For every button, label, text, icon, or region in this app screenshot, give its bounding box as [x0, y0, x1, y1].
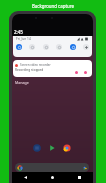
button[interactable]: App [48, 144, 56, 152]
button[interactable]: Flashlight [56, 44, 62, 50]
button[interactable]: Delete [84, 71, 87, 74]
button[interactable]: Manage [14, 79, 30, 86]
button[interactable]: Wifi [16, 44, 22, 50]
button[interactable]: Rotate [43, 44, 49, 50]
staticText: Background capture [32, 3, 74, 9]
button[interactable]: Add tile [83, 44, 89, 50]
staticText: Manage [15, 80, 29, 85]
button[interactable]: Share [75, 71, 78, 74]
button[interactable]: App [63, 144, 71, 152]
button[interactable]: Screen video recorder [13, 60, 92, 77]
button[interactable]: Sound [29, 44, 35, 50]
button[interactable]: Back [20, 172, 31, 183]
button[interactable]: Home [47, 172, 58, 183]
button[interactable]: Search [15, 163, 89, 172]
staticText: Fri, Jun 14 [16, 37, 31, 41]
staticText: Screen video recorder [20, 63, 51, 67]
button[interactable]: App [33, 144, 41, 152]
staticText: Recording stopped [15, 68, 44, 72]
button[interactable]: Bluetooth [70, 44, 76, 50]
button[interactable]: Recents [74, 172, 85, 183]
staticText: 2:45 [14, 29, 23, 35]
